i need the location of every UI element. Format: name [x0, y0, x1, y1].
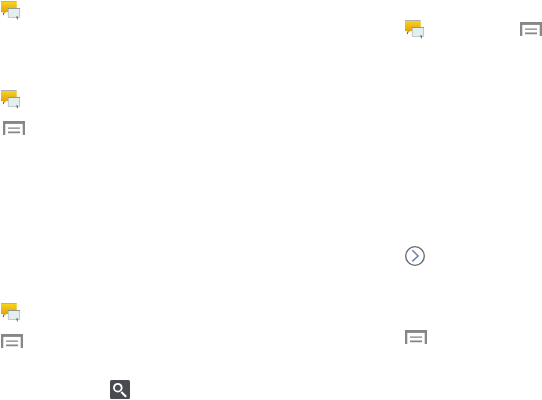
button[interactable]: Article: [3, 121, 25, 135]
button[interactable]: Article: [405, 330, 427, 344]
button[interactable]: Chat: [1, 90, 20, 109]
button[interactable]: Next: [405, 246, 425, 266]
button[interactable]: Chat: [405, 20, 424, 39]
button[interactable]: Search: [110, 380, 130, 399]
button[interactable]: Article: [1, 334, 23, 348]
button[interactable]: Article: [520, 22, 542, 36]
button[interactable]: Chat: [1, 1, 20, 20]
button[interactable]: Chat: [1, 303, 20, 322]
